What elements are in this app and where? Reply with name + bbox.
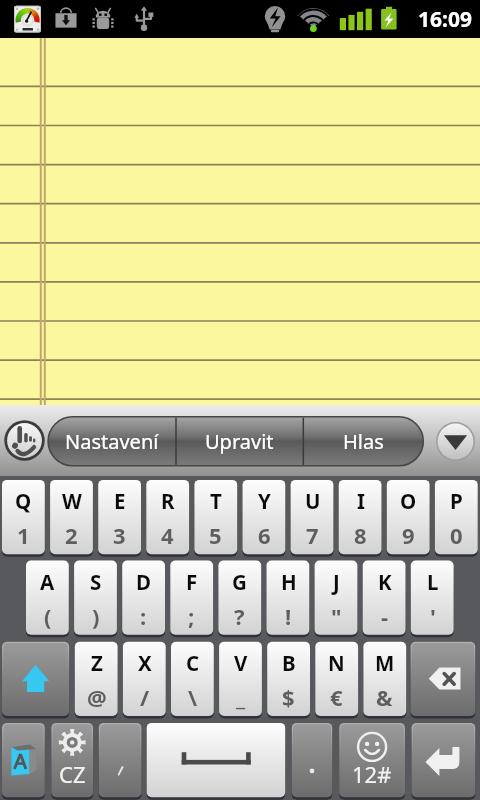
button[interactable]: Comma bbox=[99, 723, 142, 797]
staticText: ? bbox=[234, 601, 245, 631]
staticText: C bbox=[186, 649, 200, 677]
staticText: A bbox=[40, 568, 55, 596]
button[interactable]: K bbox=[363, 561, 406, 635]
staticText: $ bbox=[282, 682, 295, 712]
staticText: \ bbox=[188, 682, 198, 712]
button[interactable]: Swype input bbox=[4, 420, 45, 461]
button[interactable]: Y bbox=[243, 480, 286, 554]
staticText: Nastavení bbox=[65, 428, 159, 455]
button[interactable]: Enter bbox=[412, 723, 476, 797]
staticText: CZ bbox=[59, 759, 86, 789]
staticText: ( bbox=[44, 601, 52, 631]
staticText: 6 bbox=[258, 520, 271, 550]
staticText: Upravit bbox=[205, 428, 274, 455]
staticText: W bbox=[62, 487, 82, 515]
staticText: J bbox=[333, 568, 340, 596]
button[interactable]: N bbox=[315, 642, 358, 716]
button[interactable]: W bbox=[50, 480, 93, 554]
staticText: K bbox=[378, 568, 392, 596]
button[interactable]: Upravit bbox=[176, 417, 303, 466]
button[interactable]: Space bbox=[147, 723, 286, 797]
button[interactable]: Settings bbox=[51, 723, 93, 797]
staticText: 0 bbox=[450, 520, 463, 550]
staticText: H bbox=[281, 568, 297, 596]
staticText: Z bbox=[91, 649, 103, 677]
staticText: : bbox=[140, 601, 147, 631]
button[interactable] bbox=[0, 38, 480, 405]
staticText: I bbox=[357, 487, 365, 515]
staticText: 8 bbox=[354, 520, 367, 550]
staticText: B bbox=[282, 649, 296, 677]
staticText: 3 bbox=[113, 520, 126, 550]
staticText: M bbox=[375, 649, 395, 677]
staticText: 16:09 bbox=[418, 5, 472, 34]
button[interactable]: Dictionary bbox=[2, 723, 45, 797]
staticText: - bbox=[381, 601, 389, 631]
staticText: S bbox=[90, 568, 102, 596]
staticText: P bbox=[450, 487, 463, 515]
staticText: Y bbox=[258, 487, 271, 515]
button[interactable]: Nastavení bbox=[48, 417, 176, 466]
staticText: F bbox=[186, 568, 198, 596]
button[interactable]: H bbox=[267, 561, 310, 635]
button[interactable]: M bbox=[363, 642, 406, 716]
button[interactable]: Hide keyboard bbox=[434, 420, 476, 462]
button[interactable]: L bbox=[411, 561, 454, 635]
button[interactable]: B bbox=[267, 642, 310, 716]
staticText: G bbox=[232, 568, 247, 596]
staticText: V bbox=[234, 649, 248, 677]
staticText: 4 bbox=[161, 520, 174, 550]
staticText: E bbox=[114, 487, 126, 515]
staticText: ! bbox=[285, 601, 292, 631]
button[interactable]: E bbox=[98, 480, 141, 554]
staticText: Q bbox=[15, 487, 32, 515]
button[interactable]: Period bbox=[292, 723, 333, 797]
button[interactable]: F bbox=[170, 561, 213, 635]
button[interactable]: A bbox=[26, 561, 69, 635]
button[interactable]: I bbox=[339, 480, 382, 554]
staticText: " bbox=[331, 601, 342, 631]
staticText: N bbox=[328, 649, 345, 677]
staticText: L bbox=[427, 568, 439, 596]
staticText: 7 bbox=[306, 520, 319, 550]
staticText: R bbox=[161, 487, 175, 515]
button[interactable]: V bbox=[219, 642, 262, 716]
button[interactable]: J bbox=[315, 561, 358, 635]
staticText: 5 bbox=[209, 520, 222, 550]
staticText: _ bbox=[236, 682, 246, 712]
button[interactable]: O bbox=[387, 480, 430, 554]
staticText: X bbox=[138, 649, 152, 677]
staticText: ' bbox=[430, 601, 436, 631]
button[interactable]: Backspace bbox=[411, 642, 476, 716]
staticText: 2 bbox=[65, 520, 78, 550]
button[interactable]: S bbox=[74, 561, 117, 635]
button[interactable]: Z bbox=[75, 642, 118, 716]
button[interactable]: Hlas bbox=[303, 417, 423, 466]
staticText: € bbox=[330, 682, 343, 712]
staticText: O bbox=[400, 487, 417, 515]
staticText: U bbox=[305, 487, 321, 515]
staticText: ; bbox=[188, 601, 195, 631]
button[interactable]: Symbols bbox=[339, 723, 405, 797]
button[interactable]: G bbox=[218, 561, 261, 635]
staticText: T bbox=[210, 487, 222, 515]
button[interactable]: U bbox=[291, 480, 334, 554]
staticText: & bbox=[376, 682, 393, 712]
button[interactable]: R bbox=[146, 480, 189, 554]
button[interactable]: X bbox=[123, 642, 166, 716]
button[interactable]: Q bbox=[2, 480, 45, 554]
staticText: 12# bbox=[352, 759, 392, 789]
button[interactable]: T bbox=[194, 480, 237, 554]
button[interactable]: P bbox=[435, 480, 478, 554]
staticText: D bbox=[136, 568, 152, 596]
staticText: 9 bbox=[402, 520, 415, 550]
staticText: Hlas bbox=[343, 428, 384, 455]
staticText: @ bbox=[87, 682, 107, 712]
button[interactable]: D bbox=[122, 561, 165, 635]
button[interactable]: C bbox=[171, 642, 214, 716]
staticText: ) bbox=[92, 601, 100, 631]
staticText: 1 bbox=[17, 520, 30, 550]
button[interactable]: Shift bbox=[2, 642, 69, 716]
staticText: / bbox=[140, 682, 150, 712]
